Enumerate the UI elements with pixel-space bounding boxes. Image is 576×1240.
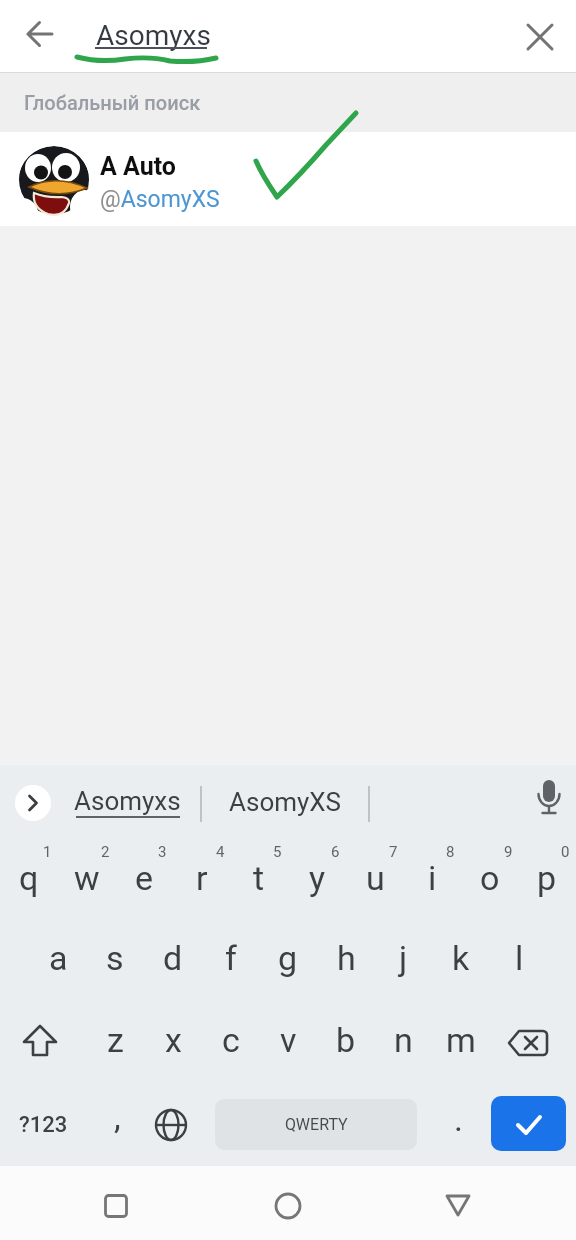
staticText: v bbox=[280, 1020, 297, 1060]
button[interactable]: m bbox=[432, 1002, 490, 1084]
staticText: k bbox=[452, 938, 470, 978]
button[interactable]: w bbox=[58, 838, 116, 920]
staticText: y bbox=[309, 858, 326, 898]
staticText: 8 bbox=[446, 843, 455, 861]
button[interactable]: u bbox=[346, 838, 404, 920]
button[interactable]: l bbox=[490, 920, 548, 1002]
button[interactable] bbox=[145, 1084, 197, 1166]
staticText: e bbox=[135, 858, 154, 898]
button[interactable]: x bbox=[144, 1002, 202, 1084]
button[interactable]: i bbox=[403, 838, 461, 920]
button[interactable] bbox=[430, 1178, 486, 1234]
button[interactable]: j bbox=[374, 920, 432, 1002]
staticText: ?123 bbox=[19, 1112, 68, 1138]
button[interactable] bbox=[15, 785, 51, 821]
button[interactable]: r bbox=[173, 838, 231, 920]
button[interactable]: g bbox=[259, 920, 317, 1002]
staticText: 3 bbox=[158, 843, 167, 861]
staticText: m bbox=[446, 1020, 476, 1060]
staticText: x bbox=[165, 1020, 182, 1060]
button[interactable]: c bbox=[202, 1002, 260, 1084]
button[interactable]: z bbox=[86, 1002, 144, 1084]
staticText: AsomyXS bbox=[229, 787, 342, 817]
button[interactable]: ?123 bbox=[0, 1084, 86, 1166]
button[interactable] bbox=[513, 5, 569, 61]
button[interactable]: a bbox=[29, 920, 87, 1002]
button[interactable] bbox=[521, 774, 576, 829]
button[interactable]: n bbox=[374, 1002, 432, 1084]
staticText: 5 bbox=[273, 843, 282, 861]
button[interactable]: v bbox=[259, 1002, 317, 1084]
staticText: c bbox=[222, 1020, 240, 1060]
button[interactable]: h bbox=[317, 920, 375, 1002]
button[interactable]: AsomyXS bbox=[210, 773, 360, 830]
button[interactable] bbox=[0, 1002, 80, 1084]
staticText: @AsomyXS bbox=[100, 186, 220, 213]
button[interactable] bbox=[260, 1178, 316, 1234]
staticText: Глобальный поиск bbox=[24, 91, 201, 114]
staticText: Asomyxs bbox=[74, 786, 181, 816]
button[interactable]: b bbox=[317, 1002, 375, 1084]
staticText: j bbox=[399, 938, 408, 978]
button[interactable]: o bbox=[461, 838, 519, 920]
staticText: 4 bbox=[216, 843, 225, 861]
staticText: , bbox=[114, 1097, 121, 1137]
button[interactable] bbox=[485, 1002, 571, 1084]
button[interactable]: t bbox=[230, 838, 288, 920]
staticText: 2 bbox=[101, 843, 110, 861]
button[interactable]: A Auto bbox=[0, 132, 576, 226]
staticText: a bbox=[49, 938, 68, 978]
staticText: d bbox=[163, 938, 183, 978]
button[interactable]: p bbox=[518, 838, 576, 920]
button[interactable]: , bbox=[92, 1084, 142, 1166]
staticText: f bbox=[225, 938, 237, 978]
staticText: p bbox=[537, 858, 557, 898]
staticText: 1 bbox=[43, 843, 52, 861]
staticText: . bbox=[454, 1099, 463, 1139]
staticText: Asomyxs bbox=[96, 19, 211, 52]
staticText: i bbox=[428, 858, 437, 898]
button[interactable] bbox=[88, 1178, 144, 1234]
button[interactable]: d bbox=[144, 920, 202, 1002]
staticText: s bbox=[106, 938, 124, 978]
button[interactable]: QWERTY bbox=[215, 1099, 417, 1150]
staticText: l bbox=[515, 938, 524, 978]
staticText: b bbox=[336, 1020, 356, 1060]
button[interactable] bbox=[10, 6, 66, 62]
staticText: A Auto bbox=[100, 152, 176, 181]
staticText: g bbox=[278, 938, 298, 978]
button[interactable]: q bbox=[0, 838, 58, 920]
staticText: h bbox=[337, 938, 356, 978]
staticText: 9 bbox=[504, 843, 513, 861]
staticText: u bbox=[366, 858, 385, 898]
staticText: o bbox=[480, 858, 500, 898]
button[interactable]: y bbox=[288, 838, 346, 920]
button[interactable]: f bbox=[202, 920, 260, 1002]
staticText: 6 bbox=[331, 843, 340, 861]
button[interactable]: Asomyxs bbox=[62, 773, 192, 830]
button[interactable]: s bbox=[86, 920, 144, 1002]
staticText: z bbox=[107, 1020, 124, 1060]
button[interactable]: k bbox=[432, 920, 490, 1002]
staticText: 7 bbox=[389, 843, 398, 861]
button[interactable]: . bbox=[432, 1084, 484, 1166]
staticText: w bbox=[74, 858, 100, 898]
button[interactable]: e bbox=[115, 838, 173, 920]
staticText: n bbox=[394, 1020, 413, 1060]
staticText: t bbox=[253, 858, 265, 898]
staticText: q bbox=[19, 858, 39, 898]
staticText: r bbox=[196, 858, 208, 898]
button[interactable] bbox=[491, 1096, 566, 1151]
staticText: 0 bbox=[561, 843, 570, 861]
staticText: QWERTY bbox=[285, 1115, 348, 1134]
